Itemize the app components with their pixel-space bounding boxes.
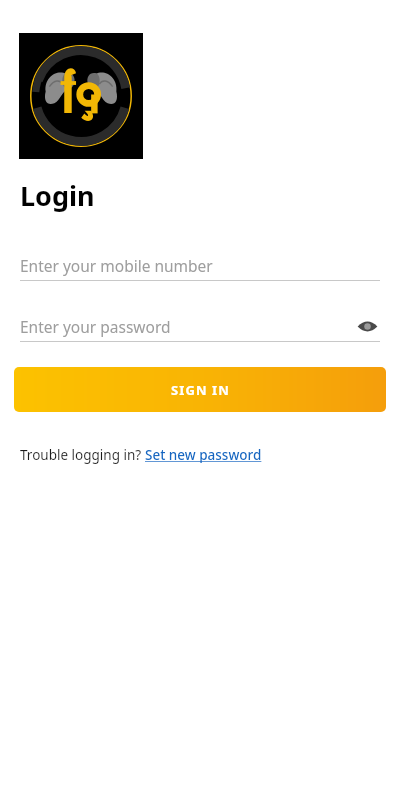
button[interactable]: Enter your password (20, 311, 380, 342)
button[interactable]: Show password (354, 313, 380, 339)
staticText: Login (20, 177, 95, 214)
button[interactable]: Enter your mobile number (20, 250, 380, 281)
staticText: Set new password (145, 446, 262, 464)
staticText: Enter your mobile number (20, 255, 380, 276)
staticText: SIGN IN (171, 381, 230, 399)
staticText: Enter your password (20, 316, 354, 337)
staticText: Trouble logging in? (20, 446, 145, 464)
button[interactable]: SIGN IN (14, 367, 386, 412)
button[interactable]: Set new password (145, 446, 262, 464)
